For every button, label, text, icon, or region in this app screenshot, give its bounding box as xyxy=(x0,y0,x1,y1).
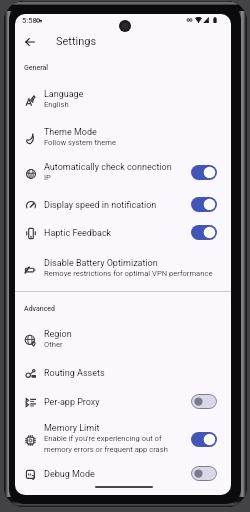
staticText: Debug Mode xyxy=(44,469,95,480)
button[interactable]: Enabled xyxy=(191,432,217,447)
staticText: Per-app Proxy xyxy=(44,397,100,408)
button[interactable]: Per-app Proxy xyxy=(15,388,231,416)
button[interactable]: Language xyxy=(15,86,231,115)
staticText: Region xyxy=(44,329,72,340)
button[interactable]: Theme Mode xyxy=(15,124,231,153)
button[interactable]: Haptic Feedback xyxy=(15,219,231,247)
staticText: 5:58 xyxy=(22,16,37,25)
staticText: Enable if you're experiencing out of mem… xyxy=(44,434,168,454)
staticText: Disable Battery Optimization xyxy=(44,258,158,269)
button[interactable]: Enabled xyxy=(191,225,217,240)
button[interactable]: Enabled xyxy=(191,197,217,212)
button[interactable]: Back xyxy=(21,33,39,51)
staticText: Automatically check connection xyxy=(44,162,172,173)
button[interactable]: Disabled xyxy=(191,466,217,481)
staticText: Remove restrictions for optimal VPN perf… xyxy=(44,269,213,278)
staticText: Other xyxy=(44,340,63,349)
staticText: Advanced xyxy=(24,305,56,313)
button[interactable]: Memory Limit xyxy=(15,426,231,466)
button[interactable]: Disable Battery Optimization xyxy=(15,255,231,284)
staticText: Theme Mode xyxy=(44,127,97,138)
button[interactable]: Debug Mode xyxy=(15,460,231,488)
staticText: Display speed in notification xyxy=(44,200,157,211)
button[interactable]: Disabled xyxy=(191,394,217,409)
staticText: IP xyxy=(44,173,51,182)
button[interactable]: Display speed in notification xyxy=(15,191,231,219)
staticText: English xyxy=(44,100,69,109)
staticText: General xyxy=(24,64,49,72)
staticText: Settings xyxy=(56,35,97,48)
button[interactable]: Enabled xyxy=(191,165,217,180)
staticText: Language xyxy=(44,89,84,100)
button[interactable]: Region xyxy=(15,326,231,355)
staticText: Memory Limit xyxy=(44,423,100,434)
staticText: Haptic Feedback xyxy=(44,228,112,239)
staticText: Routing Assets xyxy=(44,368,105,379)
button[interactable]: Automatically check connection xyxy=(15,159,231,188)
staticText: Follow system theme xyxy=(44,138,116,147)
button[interactable]: Routing Assets xyxy=(15,359,231,387)
